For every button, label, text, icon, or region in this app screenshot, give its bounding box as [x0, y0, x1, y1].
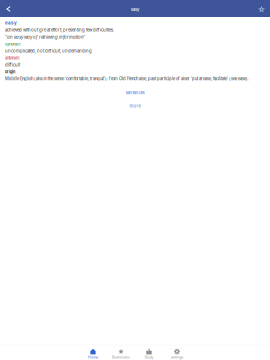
button[interactable]: sentences [5, 87, 265, 98]
staticText: achieved without great effort; presentin… [5, 27, 114, 33]
button[interactable]: Add bookmark [255, 0, 268, 18]
staticText: Middle English (also in the sense ‘comfo… [5, 76, 249, 81]
staticText: Bookmarks [112, 355, 130, 359]
staticText: Study [144, 355, 153, 359]
button[interactable]: Home [79, 346, 107, 359]
staticText: Home [88, 355, 98, 359]
staticText: uncomplicated, not difficult, undemandin… [5, 48, 92, 54]
staticText: sentences [125, 90, 144, 95]
staticText: difficult [5, 62, 20, 67]
staticText: synonym [5, 42, 20, 46]
staticText: easy [131, 7, 139, 12]
button[interactable]: Bookmarks [107, 346, 135, 359]
staticText: origin [5, 69, 15, 74]
button[interactable]: Back [2, 0, 15, 17]
button[interactable]: Study [135, 346, 163, 359]
button[interactable]: Settings [163, 346, 191, 359]
staticText: antonym [5, 56, 19, 60]
staticText: “an easy way of retrieving information” [5, 35, 85, 40]
staticText: Settings [170, 355, 183, 359]
staticText: more [129, 103, 140, 108]
button[interactable]: more [5, 100, 265, 111]
staticText: easy [5, 20, 17, 25]
